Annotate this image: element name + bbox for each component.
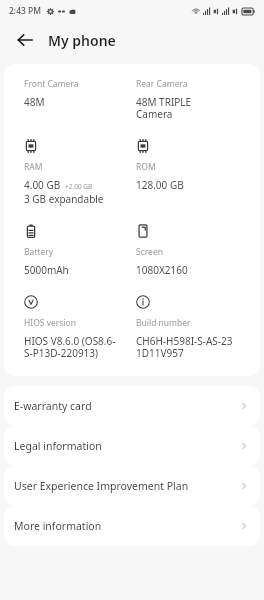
staticText: 5000mAh — [24, 263, 69, 277]
staticText: E-warranty card — [14, 399, 92, 413]
staticText: ROM — [136, 161, 156, 173]
button[interactable]: Legal information — [4, 426, 260, 466]
staticText: 48M TRIPLE Camera — [136, 95, 192, 121]
staticText: CH6H-H598I-S-AS-23 1D11V957 — [136, 334, 233, 360]
button[interactable]: User Experience Improvement Plan — [4, 466, 260, 506]
staticText: Front Camera — [24, 78, 79, 90]
staticText: My phone — [48, 31, 116, 50]
staticText: User Experience Improvement Plan — [14, 479, 189, 493]
staticText: 3 GB expandable — [24, 192, 104, 206]
staticText: Build number — [136, 317, 191, 329]
button[interactable]: E-warranty card — [4, 386, 260, 426]
staticText: 48M — [24, 95, 45, 109]
staticText: RAM — [24, 161, 43, 173]
staticText: +2.00 GB — [65, 182, 93, 191]
staticText: More information — [14, 519, 102, 533]
staticText: Screen — [136, 246, 163, 258]
staticText: Battery — [24, 246, 54, 258]
staticText: 1080X2160 — [136, 263, 188, 277]
button[interactable]: More information — [4, 506, 260, 546]
staticText: 128.00 GB — [136, 178, 184, 192]
staticText: HIOS V8.6.0 (OS8.6- S-P13D-220913) — [24, 334, 116, 360]
staticText: Legal information — [14, 439, 102, 453]
staticText: 4.00 GB — [24, 178, 61, 192]
staticText: 2:43 PM — [9, 5, 42, 17]
staticText: HIOS version — [24, 317, 76, 329]
staticText: Rear Camera — [136, 78, 188, 90]
button[interactable]: Back — [12, 27, 38, 53]
